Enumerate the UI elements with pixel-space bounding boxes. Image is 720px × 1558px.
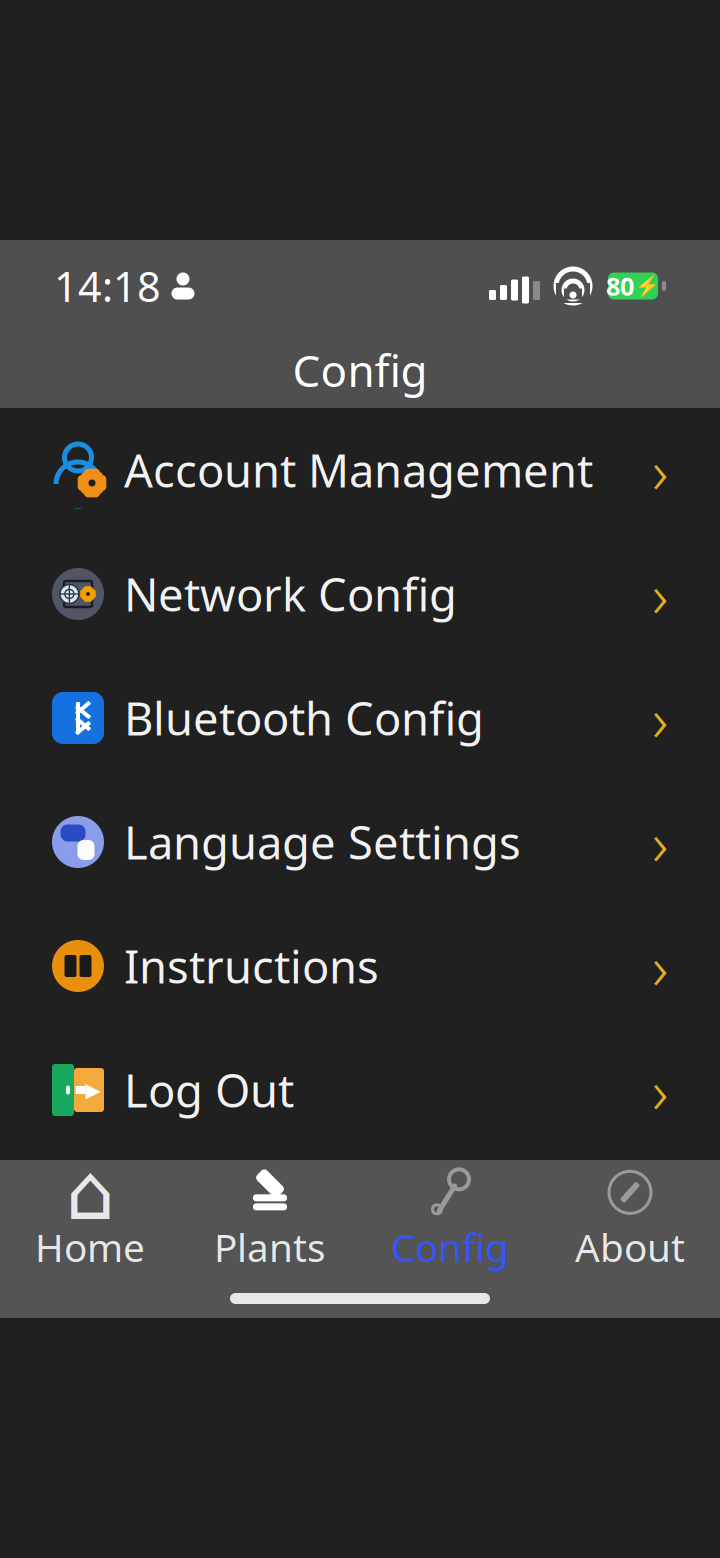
staticText: Language Settings xyxy=(124,812,521,872)
staticText: Config xyxy=(292,341,427,399)
staticText: › xyxy=(652,677,668,759)
staticText: › xyxy=(652,925,668,1007)
staticText: 80 xyxy=(606,269,634,303)
staticText: Config xyxy=(391,1221,509,1273)
staticText: Plants xyxy=(214,1221,326,1273)
button[interactable]: About xyxy=(540,1157,720,1273)
staticText: Account Management xyxy=(124,440,593,500)
staticText: Home xyxy=(35,1221,145,1273)
staticText: 14:18 xyxy=(54,259,161,313)
button[interactable]: ⌂ xyxy=(0,1157,180,1273)
button[interactable]: Instructions xyxy=(0,904,720,1028)
button[interactable]: Account Management xyxy=(0,408,720,532)
staticText: Bluetooth Config xyxy=(124,688,484,748)
staticText: ⚡ xyxy=(635,275,660,297)
staticText: About xyxy=(575,1221,685,1273)
button[interactable]: Language Settings xyxy=(0,780,720,904)
staticText: Instructions xyxy=(124,936,379,996)
button[interactable]: ▶ xyxy=(0,1028,720,1152)
staticText: › xyxy=(652,1049,668,1131)
staticText: › xyxy=(652,429,668,511)
staticText: › xyxy=(652,553,668,635)
staticText: Network Config xyxy=(124,564,457,624)
button[interactable]: Config xyxy=(360,1157,540,1273)
button[interactable]: Network Config xyxy=(0,532,720,656)
button[interactable]: Bluetooth Config xyxy=(0,656,720,780)
staticText: Log Out xyxy=(124,1060,294,1120)
button[interactable]: Plants xyxy=(180,1157,360,1273)
staticText: › xyxy=(652,801,668,883)
staticText: ⌂ xyxy=(65,1148,114,1236)
staticText: ▶ xyxy=(85,1079,100,1101)
